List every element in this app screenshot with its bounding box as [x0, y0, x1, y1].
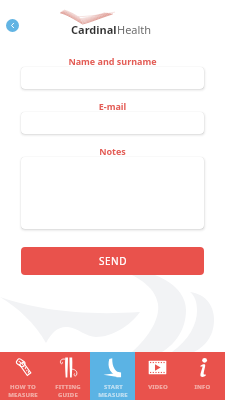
staticText: E-mail	[0, 100, 225, 112]
staticText: Cardinal	[71, 22, 117, 37]
button[interactable]: START	[90, 352, 135, 400]
staticText: Health	[117, 22, 152, 37]
staticText: START	[104, 383, 123, 391]
staticText: VIDEO	[148, 383, 168, 391]
staticText: FITTING	[55, 383, 81, 391]
staticText: HOW TO	[10, 383, 36, 391]
button[interactable]: HOW TO	[0, 352, 45, 400]
staticText: MEASURE	[98, 391, 128, 399]
button[interactable]: Back	[6, 19, 19, 32]
staticText: GUIDE	[58, 391, 78, 399]
button[interactable]: FITTING	[45, 352, 90, 400]
button[interactable]: INFO	[180, 352, 225, 400]
staticText: MEASURE	[8, 391, 38, 399]
staticText: Name and surname	[0, 55, 225, 67]
staticText: Notes	[0, 145, 225, 157]
staticText: INFO	[194, 383, 211, 391]
staticText: SEND	[99, 254, 127, 268]
button[interactable]: SEND	[21, 247, 204, 275]
button[interactable]: VIDEO	[135, 352, 180, 400]
